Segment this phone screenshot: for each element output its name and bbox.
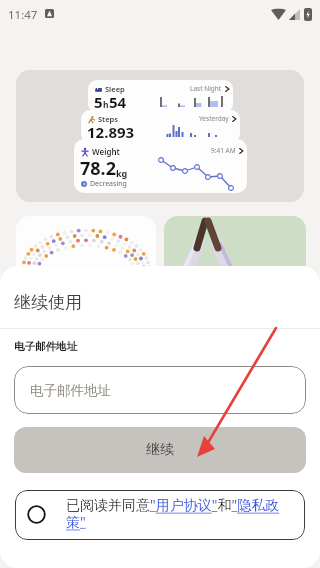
staticText: Last Night bbox=[190, 84, 222, 93]
staticText: Decreasing bbox=[90, 179, 127, 189]
button[interactable]: Agree to terms checkbox bbox=[15, 490, 305, 540]
button[interactable]: Sleep bbox=[88, 80, 233, 113]
button[interactable] bbox=[164, 216, 306, 308]
staticText: Weight bbox=[92, 146, 120, 157]
staticText: 5 bbox=[94, 92, 103, 112]
staticText: 已阅读并同意"用户协议"和"隐私政策" bbox=[66, 495, 297, 531]
staticText: kg bbox=[116, 167, 128, 179]
staticText: 78.2 bbox=[80, 156, 116, 181]
staticText: 12.893 bbox=[87, 122, 135, 142]
staticText: h bbox=[103, 99, 109, 111]
button[interactable]: 继续 bbox=[14, 427, 306, 473]
other: Agree to terms checkbox bbox=[27, 505, 46, 524]
staticText: Sleep bbox=[105, 84, 125, 94]
staticText: Yesterday bbox=[199, 114, 229, 123]
staticText: Steps bbox=[98, 114, 118, 124]
staticText: 继续 bbox=[146, 441, 174, 459]
staticText: 电子邮件地址 bbox=[30, 382, 111, 399]
staticText: 11:47 bbox=[8, 7, 38, 23]
button[interactable] bbox=[16, 70, 304, 202]
staticText: 继续使用 bbox=[14, 292, 82, 313]
staticText: 54 bbox=[109, 92, 127, 112]
staticText: 9:41 AM bbox=[211, 146, 236, 155]
button[interactable]: Weight bbox=[74, 139, 247, 193]
button[interactable]: 电子邮件地址 bbox=[14, 366, 306, 414]
button[interactable]: Steps bbox=[81, 110, 240, 143]
button[interactable]: 23-29 Jan 2028 bbox=[16, 216, 156, 308]
staticText: 电子邮件地址 bbox=[14, 340, 77, 353]
